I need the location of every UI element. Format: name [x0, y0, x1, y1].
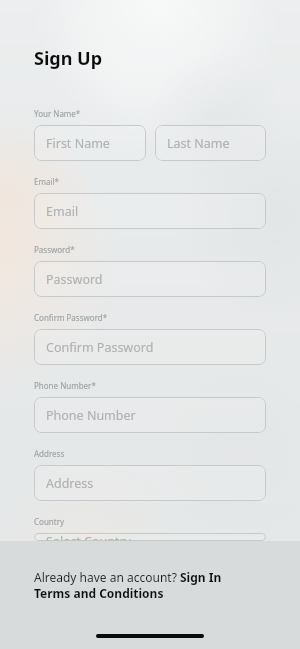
- button[interactable]: Email: [34, 193, 266, 229]
- button[interactable]: Address: [34, 465, 266, 501]
- staticText: Email*: [34, 176, 59, 187]
- staticText: Email: [46, 203, 79, 220]
- staticText: Password*: [34, 244, 75, 255]
- staticText: Password: [46, 271, 103, 288]
- button[interactable]: First Name: [34, 125, 146, 161]
- button[interactable]: Confirm Password: [34, 329, 266, 365]
- staticText: Confirm Password*: [34, 312, 108, 323]
- staticText: Country: [34, 516, 65, 527]
- button[interactable]: Already have an account? Sign In: [34, 569, 266, 585]
- staticText: Already have an account? Sign In: [34, 569, 222, 585]
- staticText: Select Country: [46, 533, 131, 541]
- button[interactable]: Terms and Conditions: [34, 585, 266, 601]
- staticText: Address: [34, 448, 65, 459]
- staticText: First Name: [46, 135, 110, 152]
- button[interactable]: Last Name: [155, 125, 266, 161]
- staticText: Your Name*: [34, 108, 81, 119]
- staticText: Phone Number*: [34, 380, 96, 391]
- staticText: Sign Up: [34, 46, 103, 71]
- staticText: Address: [46, 475, 94, 492]
- button[interactable]: Password: [34, 261, 266, 297]
- button[interactable]: Select Country: [34, 533, 266, 541]
- staticText: Terms and Conditions: [34, 585, 164, 601]
- staticText: Phone Number: [46, 407, 136, 424]
- button[interactable]: Phone Number: [34, 397, 266, 433]
- other: Home indicator: [96, 634, 204, 638]
- staticText: Confirm Password: [46, 339, 154, 356]
- staticText: Last Name: [167, 135, 230, 152]
